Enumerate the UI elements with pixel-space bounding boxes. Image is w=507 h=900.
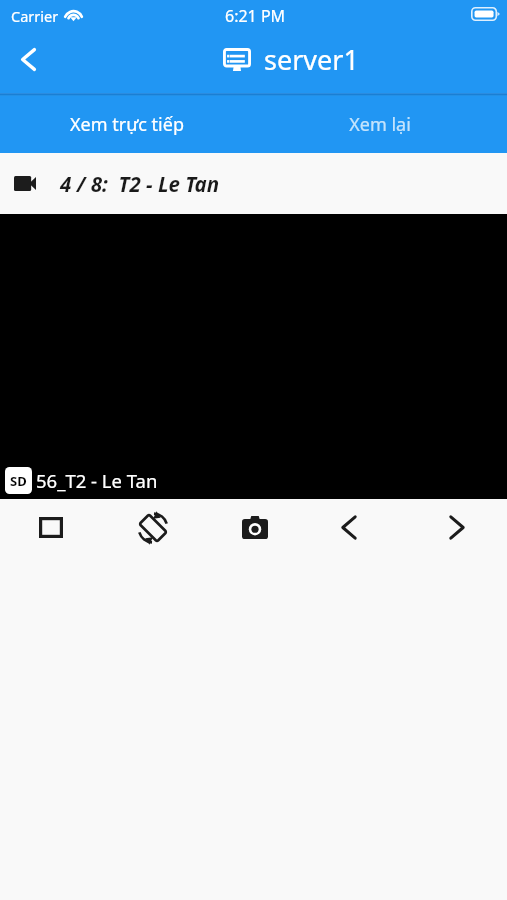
button[interactable]: Xem trực tiếp <box>0 96 253 153</box>
staticText: Xem lại <box>349 112 411 137</box>
staticText: server1 <box>264 41 359 78</box>
staticText: SD <box>10 472 27 490</box>
button[interactable]: Next channel <box>406 499 507 560</box>
button[interactable]: Snapshot <box>204 499 305 560</box>
button[interactable]: Xem lại <box>253 96 507 153</box>
staticText: 4 / 8: T2 - Le Tan <box>60 170 220 198</box>
button[interactable]: Rotate screen <box>102 499 204 560</box>
button[interactable]: Previous channel <box>305 499 406 560</box>
staticText: 56_T2 - Le Tan <box>36 468 158 493</box>
staticText: 6:21 PM <box>225 5 286 27</box>
staticText: Xem trực tiếp <box>70 112 184 137</box>
button[interactable]: Back <box>0 31 56 87</box>
button[interactable]: Stop <box>0 499 102 560</box>
staticText: Carrier <box>11 6 59 26</box>
button[interactable]: 4 / 8: T2 - Le Tan <box>0 153 507 214</box>
